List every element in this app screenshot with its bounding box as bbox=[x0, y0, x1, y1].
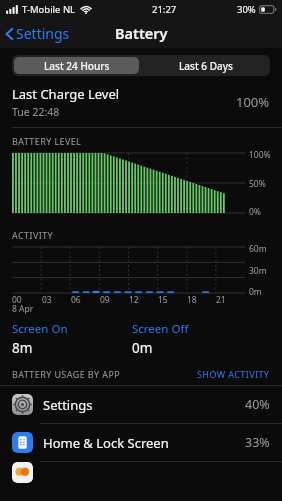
staticText: 50% bbox=[249, 178, 266, 190]
button[interactable]: Home & Lock Screen bbox=[0, 424, 282, 461]
staticText: 8 Apr bbox=[12, 303, 34, 315]
staticText: Last Charge Level bbox=[12, 85, 120, 103]
staticText: 100% bbox=[249, 149, 271, 161]
staticText: Settings bbox=[43, 396, 245, 414]
button[interactable] bbox=[0, 462, 282, 499]
staticText: BATTERY LEVEL bbox=[12, 135, 82, 147]
staticText: T-Mobile NL bbox=[22, 3, 76, 16]
staticText: 30% bbox=[237, 3, 256, 16]
staticText: 12 bbox=[129, 294, 139, 306]
staticText: 0m bbox=[132, 339, 153, 357]
staticText: ACTIVITY bbox=[12, 229, 54, 241]
button[interactable]: Last 6 Days bbox=[141, 55, 270, 76]
staticText: Settings bbox=[16, 24, 70, 43]
button[interactable]: Screen On bbox=[12, 321, 132, 357]
button[interactable]: Settings bbox=[0, 19, 78, 48]
staticText: 100% bbox=[236, 93, 270, 111]
staticText: Last 6 Days bbox=[179, 59, 233, 73]
button[interactable]: Last 24 Hours bbox=[14, 57, 139, 74]
staticText: 40% bbox=[245, 396, 270, 413]
staticText: 18 bbox=[187, 294, 197, 306]
staticText: Home & Lock Screen bbox=[43, 434, 245, 452]
button[interactable]: SHOW ACTIVITY bbox=[197, 368, 270, 380]
staticText: 03 bbox=[42, 294, 52, 306]
staticText: BATTERY USAGE BY APP bbox=[12, 368, 197, 380]
staticText: 15 bbox=[158, 294, 168, 306]
staticText: Screen On bbox=[12, 321, 68, 337]
staticText: 30m bbox=[249, 265, 267, 277]
staticText: 06 bbox=[71, 294, 81, 306]
staticText: 21:27 bbox=[152, 3, 177, 16]
staticText: 8m bbox=[12, 339, 33, 357]
staticText: 33% bbox=[245, 434, 270, 451]
staticText: Battery bbox=[115, 23, 168, 43]
staticText: 60m bbox=[249, 243, 267, 255]
staticText: SHOW ACTIVITY bbox=[197, 368, 270, 380]
button[interactable]: Settings bbox=[0, 386, 282, 423]
staticText: 0% bbox=[249, 206, 261, 218]
button[interactable]: Screen Off bbox=[132, 321, 270, 357]
staticText: 09 bbox=[100, 294, 110, 306]
staticText: 0m bbox=[249, 286, 262, 298]
staticText: Last 24 Hours bbox=[44, 59, 110, 73]
staticText: 21 bbox=[216, 294, 226, 306]
staticText: Tue 22:48 bbox=[12, 105, 60, 119]
staticText: Screen Off bbox=[132, 321, 189, 337]
staticText: 00 bbox=[12, 294, 22, 306]
